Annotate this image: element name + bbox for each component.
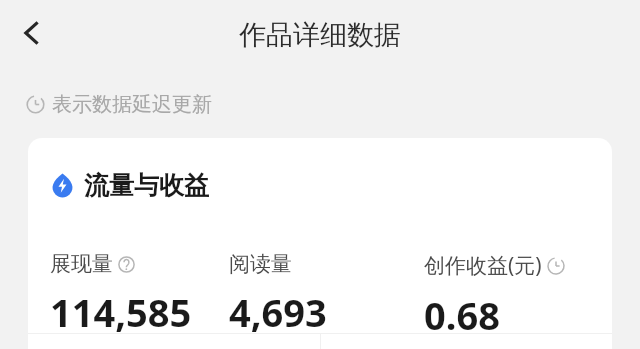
button[interactable]: 展现量 <box>28 251 226 338</box>
button[interactable]: 阅读量 <box>226 251 419 338</box>
button[interactable]: 创作收益(元) <box>419 251 609 341</box>
staticText: 展现量 <box>50 251 113 277</box>
button[interactable]: Back <box>4 5 60 61</box>
staticText: 阅读量 <box>229 251 292 277</box>
button[interactable]: 流量与收益 <box>50 170 209 201</box>
staticText: 114,585 <box>50 286 192 338</box>
staticText: 0.68 <box>424 289 500 341</box>
staticText: 4,693 <box>229 286 327 338</box>
staticText: 创作收益(元) <box>424 251 542 280</box>
staticText: 表示数据延迟更新 <box>52 92 212 117</box>
staticText: 流量与收益 <box>84 170 209 201</box>
staticText: 作品详细数据 <box>0 18 640 52</box>
